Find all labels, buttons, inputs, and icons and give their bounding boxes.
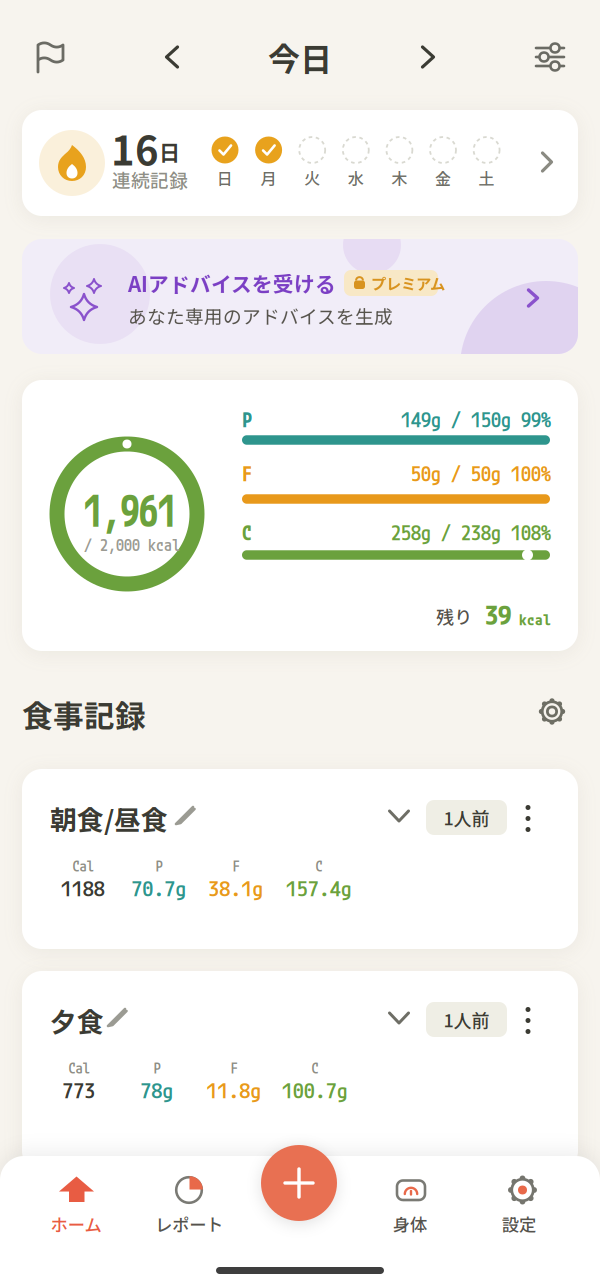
button[interactable]: ホーム xyxy=(31,1166,600,1288)
staticText: P xyxy=(155,857,162,875)
staticText: kcal xyxy=(511,610,551,629)
button[interactable] xyxy=(379,999,600,1288)
staticText: 100.7g xyxy=(282,1077,348,1103)
staticText: 朝食/昼食 xyxy=(50,799,168,838)
staticText: ホーム xyxy=(50,1211,101,1237)
staticText: P xyxy=(153,1059,160,1077)
button[interactable] xyxy=(150,35,600,1288)
staticText: レポート xyxy=(155,1211,223,1237)
staticText: 38.1g xyxy=(208,875,263,901)
button[interactable] xyxy=(513,998,543,1042)
button[interactable] xyxy=(530,689,600,1288)
staticText: 日 xyxy=(159,136,180,167)
button[interactable]: AIアドバイスを受ける xyxy=(22,239,578,354)
staticText: 16 xyxy=(111,119,159,177)
staticText: 39 xyxy=(472,598,511,631)
staticText: 身体 xyxy=(393,1211,427,1237)
button[interactable]: 1人前 xyxy=(426,800,507,835)
staticText: P xyxy=(242,407,252,432)
staticText: 78g xyxy=(140,1077,173,1103)
staticText: F xyxy=(242,461,252,486)
staticText: 今日 xyxy=(268,34,332,80)
staticText: 月 xyxy=(261,166,277,190)
button[interactable]: 16 xyxy=(22,110,578,216)
staticText: 1人前 xyxy=(443,1006,489,1033)
button[interactable] xyxy=(379,797,600,1288)
button[interactable]: 1人前 xyxy=(426,1002,507,1037)
staticText: 土 xyxy=(479,166,495,190)
staticText: F xyxy=(230,1059,237,1077)
staticText: 木 xyxy=(391,166,407,190)
staticText: 水 xyxy=(348,166,364,190)
button[interactable] xyxy=(29,39,600,1288)
staticText: 夕食 xyxy=(50,1001,104,1040)
button[interactable] xyxy=(528,39,600,1288)
staticText: 連続記録 xyxy=(112,166,188,193)
staticText: あなた専用のアドバイスを生成 xyxy=(128,302,393,329)
staticText: プレミアム xyxy=(371,272,445,294)
staticText: 火 xyxy=(304,166,320,190)
staticText: 50g / 50g 100% xyxy=(411,461,551,486)
staticText: 70.7g xyxy=(131,875,186,901)
staticText: 設定 xyxy=(502,1211,536,1237)
staticText: C xyxy=(315,857,322,875)
staticText: Cal xyxy=(72,857,93,875)
staticText: 773 xyxy=(62,1077,95,1103)
staticText: AIアドバイスを受ける xyxy=(128,268,336,298)
staticText: 11.8g xyxy=(206,1077,261,1103)
button[interactable]: 夕食 xyxy=(50,1001,600,1288)
staticText: C xyxy=(242,520,252,545)
staticText: 1188 xyxy=(61,875,105,901)
staticText: 残り xyxy=(436,603,472,629)
staticText: Cal xyxy=(68,1059,89,1077)
staticText: 1,961 xyxy=(75,483,185,537)
button[interactable] xyxy=(513,796,543,840)
staticText: 258g / 238g 108% xyxy=(391,520,551,545)
staticText: C xyxy=(311,1059,318,1077)
staticText: 149g / 150g 99% xyxy=(401,407,551,432)
button[interactable]: レポート xyxy=(144,1166,600,1288)
button[interactable] xyxy=(261,1145,337,1221)
staticText: 1人前 xyxy=(443,804,489,831)
button[interactable] xyxy=(406,35,600,1288)
button[interactable]: 朝食/昼食 xyxy=(50,799,600,1288)
staticText: 157.4g xyxy=(286,875,352,901)
staticText: F xyxy=(232,857,239,875)
button[interactable]: 身体 xyxy=(365,1166,600,1288)
staticText: 食事記録 xyxy=(22,692,146,736)
staticText: 日 xyxy=(217,166,233,190)
button[interactable]: 設定 xyxy=(474,1166,600,1288)
staticText: / 2,000 kcal xyxy=(84,535,180,555)
staticText: 金 xyxy=(435,166,451,190)
